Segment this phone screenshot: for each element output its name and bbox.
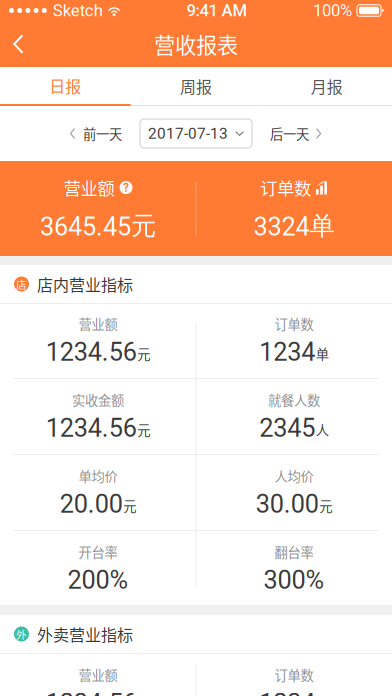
staticText: 元 (137, 344, 150, 363)
staticText: 1234 (259, 688, 315, 696)
staticText: 订单数 (274, 314, 313, 333)
button[interactable]: 后一天 (270, 116, 322, 151)
button[interactable]: 周报 (131, 67, 261, 106)
staticText: ? (123, 180, 129, 195)
button[interactable]: 前一天 (70, 116, 122, 151)
staticText: 1234 (259, 337, 315, 367)
staticText: 30.00 (256, 489, 319, 519)
staticText: 订单数 (274, 665, 313, 684)
staticText: 2017-07-13 (148, 124, 228, 142)
staticText: 3645.45元 (40, 210, 156, 242)
staticText: 月报 (311, 74, 343, 98)
staticText: 翻台率 (274, 542, 313, 561)
staticText: 店 (16, 276, 27, 292)
staticText: 元 (123, 496, 136, 515)
staticText: 2345 (259, 413, 315, 443)
staticText: 200% (67, 565, 128, 595)
staticText: 前一天 (83, 124, 122, 143)
staticText: 开台率 (78, 542, 117, 561)
staticText: 后一天 (270, 124, 309, 143)
staticText: 外 (16, 626, 27, 642)
staticText: 单 (316, 344, 329, 363)
staticText: 店内营业指标 (37, 272, 133, 296)
staticText: 3324单 (253, 210, 334, 242)
staticText: 营收报表 (154, 29, 238, 59)
button[interactable]: 2017-07-13 (140, 119, 252, 148)
staticText: 营业额 (63, 175, 114, 200)
staticText: 外卖营业指标 (37, 622, 133, 646)
staticText: 订单数 (260, 175, 311, 200)
staticText: 20.00 (60, 489, 123, 519)
button[interactable]: 月报 (261, 67, 392, 106)
staticText: 营业额 (78, 665, 117, 684)
staticText: 9:41 AM (186, 1, 247, 20)
staticText: 元 (137, 420, 150, 439)
staticText: Sketch (53, 1, 103, 20)
staticText: 人均价 (274, 466, 313, 485)
staticText: 1234.56 (46, 413, 137, 443)
staticText: 周报 (180, 74, 212, 98)
staticText: 日报 (49, 74, 81, 97)
staticText: 就餐人数 (268, 390, 320, 409)
staticText: 100% (313, 1, 352, 20)
staticText: 营业额 (78, 314, 117, 333)
button[interactable]: 返回 (0, 22, 44, 66)
staticText: 1234.56 (46, 337, 137, 367)
button[interactable]: 日报 (0, 67, 131, 106)
staticText: 人 (316, 420, 329, 439)
staticText: 单均价 (78, 466, 117, 485)
staticText: 实收金额 (72, 390, 124, 409)
staticText: 1234.56 (46, 688, 137, 696)
staticText: 元 (319, 496, 332, 515)
staticText: 300% (263, 565, 324, 595)
